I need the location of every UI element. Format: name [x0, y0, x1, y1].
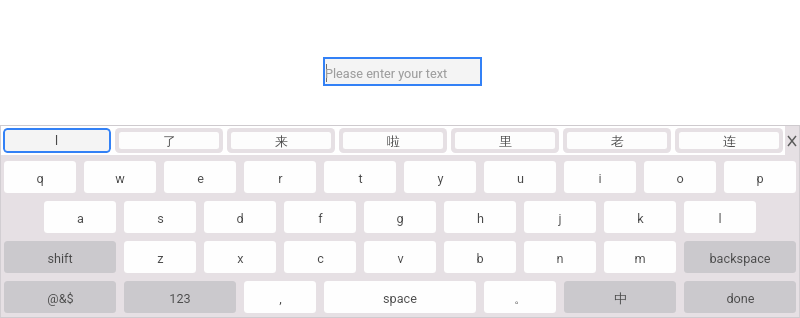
button[interactable]: @&$: [4, 281, 116, 313]
staticText: t: [358, 171, 363, 186]
button[interactable]: ,: [244, 281, 316, 313]
button[interactable]: l: [684, 201, 756, 233]
button[interactable]: d: [204, 201, 276, 233]
staticText: backspace: [709, 251, 771, 266]
button[interactable]: q: [4, 161, 76, 193]
staticText: p: [756, 171, 764, 186]
staticText: b: [476, 251, 484, 266]
staticText: g: [396, 211, 404, 226]
staticText: shift: [47, 251, 73, 266]
button[interactable]: h: [444, 201, 516, 233]
staticText: 里: [499, 133, 512, 149]
staticText: ,: [279, 291, 282, 306]
staticText: a: [77, 211, 84, 226]
staticText: e: [197, 171, 204, 186]
staticText: j: [558, 211, 562, 226]
button[interactable]: c: [284, 241, 356, 273]
button[interactable]: r: [244, 161, 316, 193]
staticText: z: [157, 251, 164, 266]
button[interactable]: 来: [231, 132, 331, 149]
button[interactable]: y: [404, 161, 476, 193]
button[interactable]: 连: [679, 132, 779, 149]
button[interactable]: space: [324, 281, 476, 313]
button[interactable]: i: [564, 161, 636, 193]
button[interactable]: x: [204, 241, 276, 273]
button[interactable]: 。: [484, 281, 556, 313]
button[interactable]: w: [84, 161, 156, 193]
staticText: o: [676, 171, 684, 186]
button[interactable]: 啦: [343, 132, 443, 149]
button[interactable]: Close candidates: [785, 126, 800, 155]
button[interactable]: backspace: [684, 241, 796, 273]
staticText: r: [278, 171, 283, 186]
button[interactable]: s: [124, 201, 196, 233]
staticText: 中: [614, 290, 627, 306]
button[interactable]: g: [364, 201, 436, 233]
button[interactable]: l: [7, 132, 107, 149]
button[interactable]: b: [444, 241, 516, 273]
button[interactable]: a: [44, 201, 116, 233]
button[interactable]: p: [724, 161, 796, 193]
button[interactable]: 里: [455, 132, 555, 149]
staticText: h: [477, 211, 484, 226]
staticText: v: [397, 251, 404, 266]
staticText: 123: [169, 291, 191, 306]
button[interactable]: f: [284, 201, 356, 233]
staticText: i: [598, 171, 602, 186]
button[interactable]: 123: [124, 281, 236, 313]
staticText: y: [437, 171, 444, 186]
staticText: done: [726, 291, 755, 306]
button[interactable]: e: [164, 161, 236, 193]
staticText: n: [556, 251, 564, 266]
staticText: 来: [275, 133, 288, 149]
staticText: q: [36, 171, 44, 186]
staticText: l: [718, 211, 722, 226]
button[interactable]: 了: [119, 132, 219, 149]
staticText: space: [383, 291, 417, 306]
button[interactable]: o: [644, 161, 716, 193]
staticText: w: [115, 171, 125, 186]
button[interactable]: 中: [564, 281, 676, 313]
button[interactable]: z: [124, 241, 196, 273]
staticText: l: [55, 133, 59, 148]
button[interactable]: j: [524, 201, 596, 233]
button[interactable]: done: [684, 281, 796, 313]
staticText: 连: [723, 133, 736, 149]
staticText: 了: [163, 133, 176, 149]
button[interactable]: u: [484, 161, 556, 193]
staticText: x: [237, 251, 244, 266]
staticText: s: [157, 211, 164, 226]
staticText: d: [236, 211, 244, 226]
button[interactable]: shift: [4, 241, 116, 273]
button[interactable]: m: [604, 241, 676, 273]
staticText: k: [637, 211, 644, 226]
staticText: 老: [611, 133, 624, 149]
staticText: Please enter your text: [325, 66, 448, 81]
staticText: 。: [514, 290, 527, 306]
button[interactable]: n: [524, 241, 596, 273]
staticText: m: [634, 251, 646, 266]
staticText: f: [318, 211, 323, 226]
button[interactable]: t: [324, 161, 396, 193]
button[interactable]: v: [364, 241, 436, 273]
button[interactable]: k: [604, 201, 676, 233]
staticText: 啦: [387, 133, 400, 149]
staticText: c: [317, 251, 324, 266]
button[interactable]: 老: [567, 132, 667, 149]
staticText: u: [517, 171, 524, 186]
staticText: @&$: [47, 291, 74, 306]
button[interactable]: Please enter your text: [323, 57, 482, 86]
